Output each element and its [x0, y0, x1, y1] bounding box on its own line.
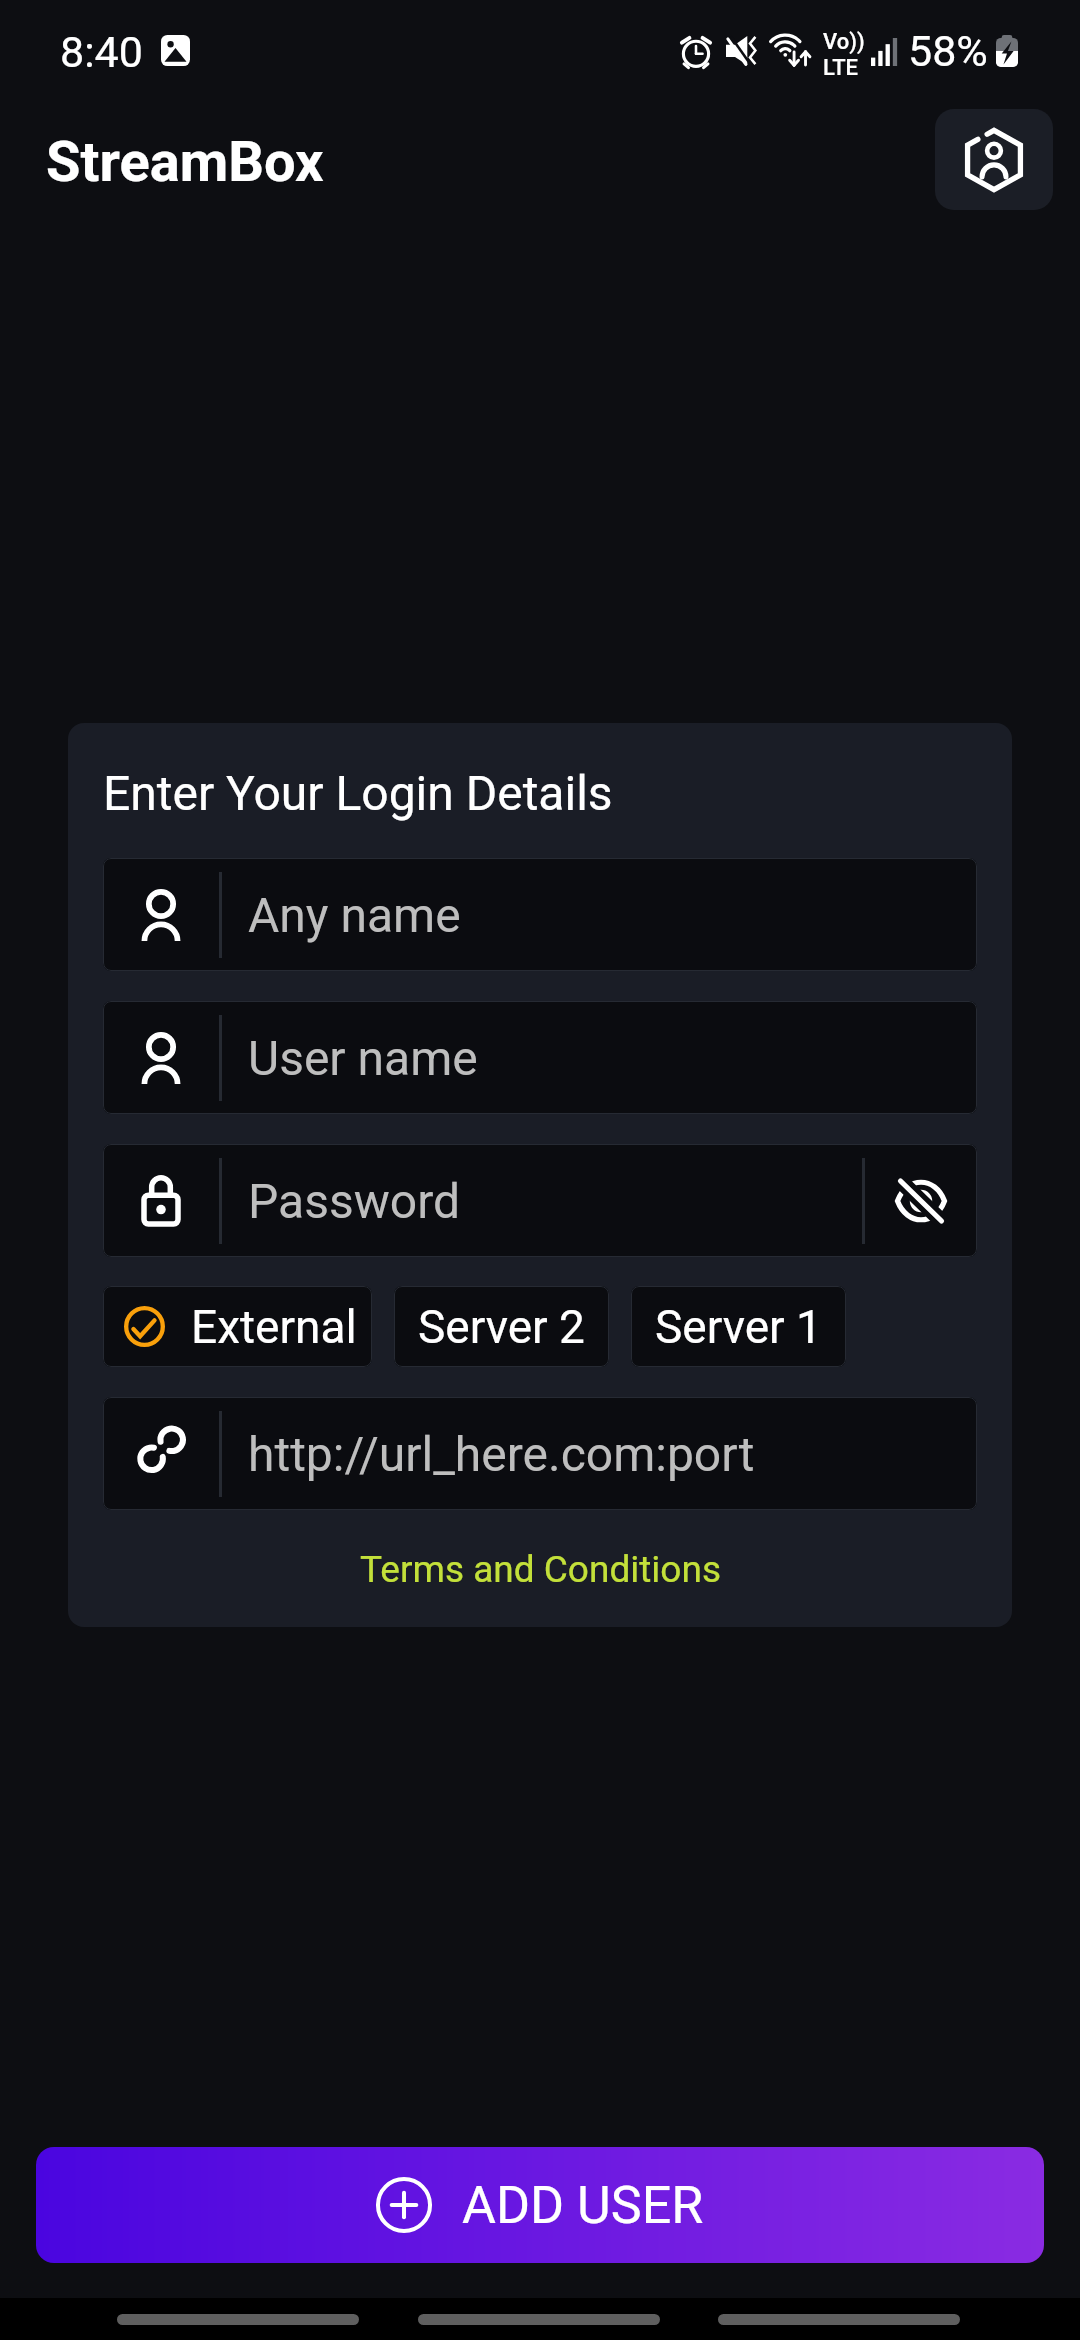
staticText: User name: [248, 1030, 478, 1086]
button[interactable]: Account: [935, 109, 1053, 210]
staticText: External: [191, 1300, 357, 1354]
staticText: Any name: [248, 887, 461, 943]
button[interactable]: User name: [103, 1001, 977, 1114]
button[interactable]: Terms and Conditions: [350, 1542, 731, 1597]
button[interactable]: Password: [103, 1144, 977, 1257]
staticText: Enter Your Login Details: [103, 765, 613, 821]
button[interactable]: Back: [718, 2314, 960, 2325]
button[interactable]: Server 2: [394, 1286, 609, 1367]
staticText: StreamBox: [46, 129, 324, 195]
staticText: http://url_here.com:port: [248, 1426, 755, 1482]
button[interactable]: External: [103, 1286, 372, 1367]
staticText: 8:40: [60, 27, 143, 77]
button[interactable]: Recent apps: [117, 2314, 359, 2325]
staticText: Vo)): [823, 29, 865, 55]
staticText: Server 2: [418, 1300, 585, 1354]
staticText: 58%: [908, 26, 988, 76]
staticText: Password: [248, 1173, 461, 1229]
button[interactable]: ADD USER: [36, 2147, 1044, 2263]
staticText: ADD USER: [462, 2175, 704, 2236]
button[interactable]: http://url_here.com:port: [103, 1397, 977, 1510]
button[interactable]: Home: [418, 2314, 660, 2325]
button[interactable]: Show password: [865, 1144, 977, 1257]
staticText: Server 1: [655, 1300, 822, 1354]
button[interactable]: Any name: [103, 858, 977, 971]
staticText: LTE: [823, 55, 859, 81]
button[interactable]: Server 1: [631, 1286, 846, 1367]
